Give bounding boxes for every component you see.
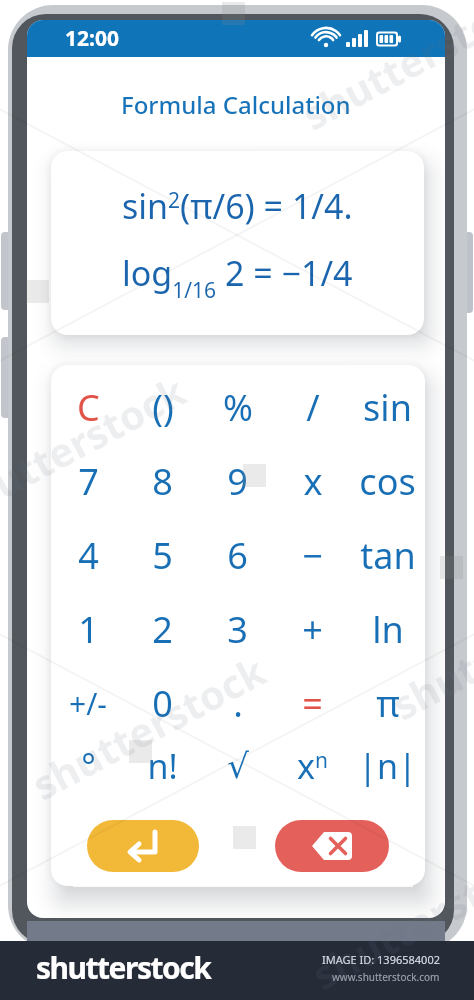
staticText: 2 bbox=[152, 605, 173, 654]
staticText: . bbox=[233, 679, 243, 728]
button[interactable]: % bbox=[200, 370, 275, 444]
staticText: +/- bbox=[69, 683, 107, 724]
staticText: 5 bbox=[152, 531, 173, 580]
button[interactable]: = bbox=[275, 666, 350, 740]
button[interactable]: 9 bbox=[200, 444, 275, 518]
button[interactable]: π bbox=[350, 666, 425, 740]
button[interactable]: − bbox=[275, 518, 350, 592]
staticText: 1 bbox=[78, 605, 99, 654]
button[interactable]: 7 bbox=[51, 444, 125, 518]
staticText: / bbox=[306, 383, 320, 432]
button[interactable]: 2 bbox=[125, 592, 200, 666]
staticText: 0 bbox=[152, 679, 173, 728]
button[interactable]: sin bbox=[350, 370, 425, 444]
button[interactable]: 1 bbox=[51, 592, 125, 666]
button[interactable]: 4 bbox=[51, 518, 125, 592]
staticText: x bbox=[303, 457, 323, 506]
staticText: 8 bbox=[152, 457, 173, 506]
button[interactable]: / bbox=[275, 370, 350, 444]
button[interactable]: () bbox=[125, 370, 200, 444]
staticText: √ bbox=[227, 746, 249, 786]
button[interactable]: C bbox=[51, 370, 125, 444]
staticText: IMAGE ID: 1396584002 bbox=[322, 952, 440, 967]
staticText: + bbox=[302, 605, 323, 654]
staticText: |n| bbox=[358, 743, 417, 789]
staticText: = bbox=[302, 679, 323, 728]
button[interactable]: +/- bbox=[51, 666, 125, 740]
staticText: ° bbox=[81, 743, 96, 789]
button[interactable]: 6 bbox=[200, 518, 275, 592]
staticText: shutterstock bbox=[292, 0, 474, 141]
staticText: sin2(π/6) = 1/4. bbox=[122, 183, 353, 229]
button[interactable]: 0 bbox=[125, 666, 200, 740]
staticText: 9 bbox=[227, 457, 248, 506]
button[interactable]: ° bbox=[51, 740, 125, 792]
button[interactable]: cos bbox=[350, 444, 425, 518]
button[interactable] bbox=[275, 820, 389, 872]
staticText: 12:00 bbox=[65, 24, 119, 53]
staticText: () bbox=[152, 383, 174, 432]
staticText: π bbox=[376, 679, 400, 728]
staticText: www.shutterstock.com bbox=[332, 970, 440, 984]
staticText: sin bbox=[363, 383, 412, 432]
staticText: 3 bbox=[227, 605, 248, 654]
button[interactable]: ln bbox=[350, 592, 425, 666]
staticText: ln bbox=[372, 605, 404, 654]
button[interactable]: x bbox=[275, 444, 350, 518]
staticText: C bbox=[77, 383, 100, 432]
staticText: shutterstock bbox=[302, 833, 474, 1000]
staticText: shutterstock bbox=[382, 563, 474, 731]
button[interactable]: + bbox=[275, 592, 350, 666]
button[interactable] bbox=[87, 820, 199, 872]
staticText: xn bbox=[297, 743, 328, 789]
staticText: cos bbox=[359, 457, 416, 506]
staticText: shutterstock bbox=[22, 643, 275, 811]
button[interactable]: xn bbox=[275, 740, 350, 792]
staticText: tan bbox=[360, 531, 416, 580]
button[interactable]: . bbox=[200, 666, 275, 740]
staticText: 6 bbox=[227, 531, 248, 580]
staticText: 4 bbox=[78, 531, 99, 580]
button[interactable]: n! bbox=[125, 740, 200, 792]
staticText: % bbox=[223, 383, 253, 432]
button[interactable]: |n| bbox=[350, 740, 425, 792]
staticText: Formula Calculation bbox=[121, 88, 351, 121]
staticText: shutterstock bbox=[0, 363, 195, 531]
button[interactable]: 8 bbox=[125, 444, 200, 518]
button[interactable]: tan bbox=[350, 518, 425, 592]
staticText: shutterstock bbox=[36, 947, 211, 988]
staticText: − bbox=[302, 531, 323, 580]
staticText: 7 bbox=[78, 457, 99, 506]
staticText: n! bbox=[147, 743, 178, 789]
button[interactable]: 3 bbox=[200, 592, 275, 666]
button[interactable]: √ bbox=[200, 740, 275, 792]
staticText: log1/16 2 = −1/4 bbox=[122, 250, 353, 304]
button[interactable]: 5 bbox=[125, 518, 200, 592]
